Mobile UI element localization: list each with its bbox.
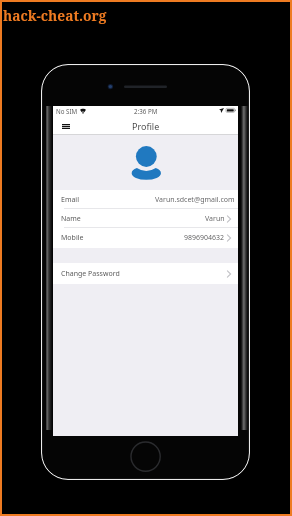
staticText: 2:36 PM [134,107,158,115]
button[interactable]: Mobile [53,228,238,247]
button[interactable]: Change Password [53,263,238,284]
staticText: Varun [205,214,225,224]
staticText: Name [61,214,81,224]
staticText: Email [61,195,79,205]
button[interactable]: Open navigation menu [59,120,72,133]
button[interactable]: Email [53,190,238,209]
staticText: Change Password [61,269,120,279]
staticText: 9896904632 [184,233,225,243]
staticText: No SIM [56,107,78,115]
button[interactable]: Name [53,209,238,228]
staticText: Varun.sdcet@gmail.com [155,195,235,205]
staticText: Profile [132,120,160,132]
staticText: hack-cheat.org [3,6,107,25]
staticText: Mobile [61,233,84,243]
